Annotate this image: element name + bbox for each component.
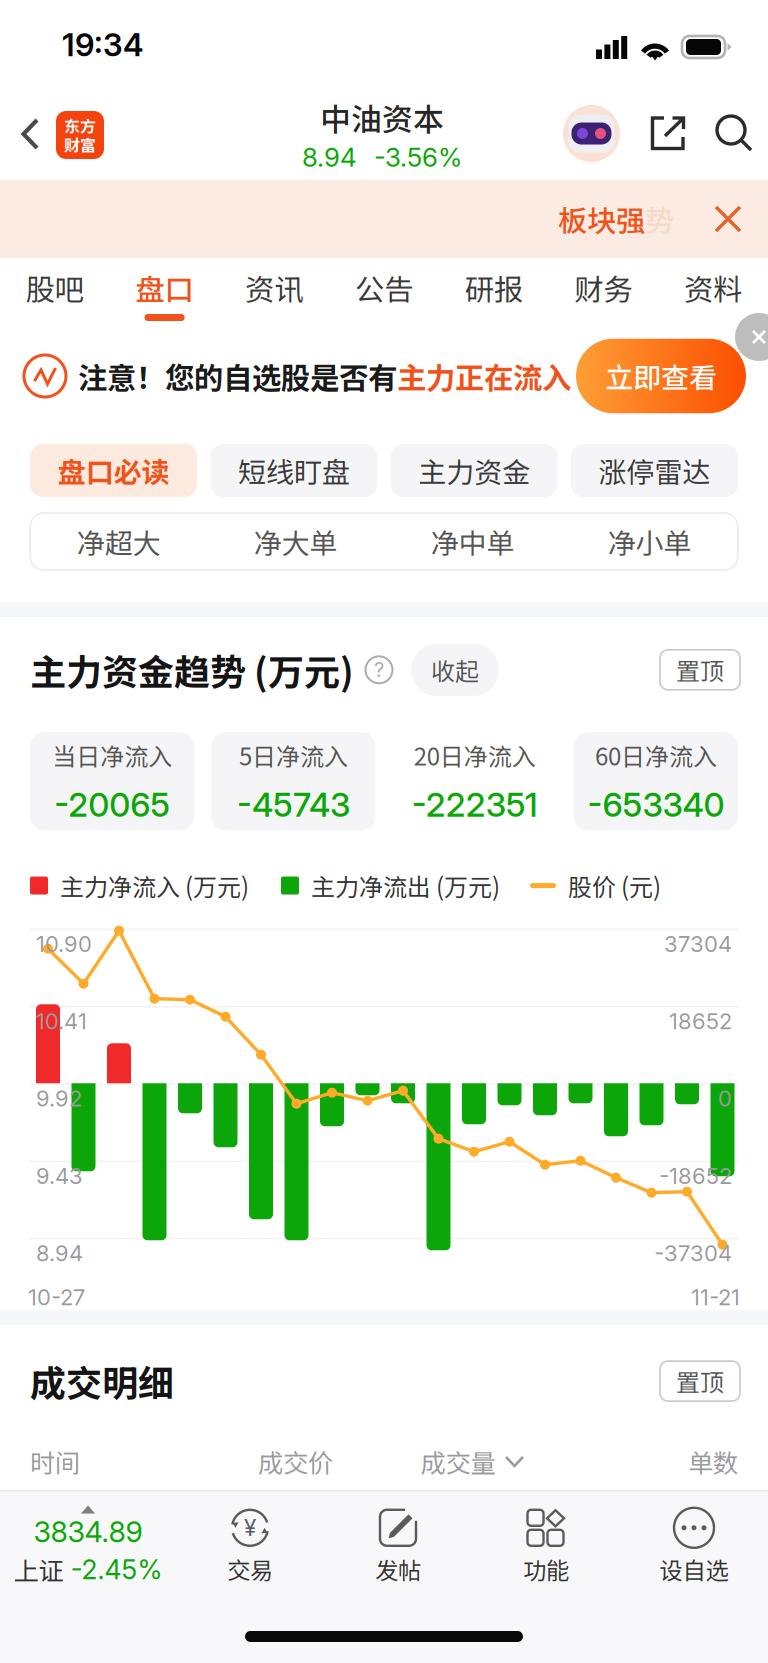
staticText: 东方 [64, 114, 96, 137]
button[interactable]: 5日净流入 [211, 732, 375, 830]
staticText: 盘口必读 [58, 450, 170, 491]
staticText: 9.43 [36, 1163, 83, 1189]
staticText: 5日净流入 [239, 738, 348, 772]
staticText: 9.92 [36, 1085, 82, 1112]
button[interactable]: 东方财富 [0, 88, 104, 159]
staticText: 中油资本 [320, 95, 444, 139]
staticText: 11-21 [691, 1284, 740, 1310]
staticText: 主力净流入 (万元) [60, 868, 249, 903]
staticText: 20日净流入 [414, 738, 536, 772]
staticText: -222351 [412, 784, 538, 825]
button[interactable]: 资料 [658, 255, 768, 328]
staticText: 立即查看 [605, 356, 717, 396]
button[interactable]: 关闭广告 [720, 327, 768, 375]
staticText: -37304 [654, 1240, 732, 1266]
button[interactable]: 置顶 [660, 1361, 740, 1401]
staticText: 主力正在流入 [397, 355, 571, 397]
button[interactable]: 净超大 [30, 513, 207, 570]
staticText: 当日净流入 [52, 738, 172, 772]
staticText: -2.45% [70, 1553, 162, 1586]
staticText: 成交价 [258, 1443, 333, 1480]
button[interactable]: ¥ [176, 1507, 324, 1586]
staticText: 研报 [465, 266, 523, 309]
button[interactable]: AI 助手 [0, 88, 620, 162]
staticText: 净中单 [430, 521, 514, 562]
button[interactable]: 分享 [0, 88, 768, 179]
staticText: 财富 [64, 133, 96, 156]
staticText: 3834.89 [33, 1514, 142, 1549]
staticText: 0 [718, 1085, 732, 1112]
button[interactable]: 财务 [549, 255, 658, 328]
staticText: 设自选 [659, 1552, 728, 1586]
button[interactable]: 当日净流入 [30, 732, 194, 830]
button[interactable]: 主力资金 [390, 444, 558, 497]
staticText: 60日净流入 [595, 738, 717, 772]
button[interactable]: 注意！ [0, 327, 768, 425]
staticText: 短线盯盘 [238, 450, 350, 491]
staticText: 净大单 [253, 521, 337, 562]
button[interactable]: 设自选 [620, 1507, 768, 1586]
button[interactable]: 发帖 [324, 1507, 472, 1586]
staticText: 势 [645, 198, 674, 240]
staticText: 公告 [355, 266, 413, 309]
staticText: 19:34 [62, 26, 144, 64]
staticText: 上证 [13, 1551, 63, 1588]
staticText: 单数 [688, 1443, 738, 1480]
button[interactable]: 3834.89 [0, 1505, 176, 1588]
staticText: 37304 [664, 931, 732, 957]
button[interactable]: 成交量 [420, 1443, 524, 1480]
staticText: -653340 [587, 784, 724, 825]
button[interactable]: 20日净流入 [392, 732, 557, 830]
staticText: 置顶 [676, 1364, 724, 1398]
staticText: 置顶 [676, 652, 724, 687]
staticText: 18652 [669, 1008, 732, 1035]
button[interactable]: 净中单 [384, 513, 561, 570]
staticText: 主力净流出 (万元) [311, 868, 500, 903]
staticText: 8.94 [302, 141, 357, 173]
button[interactable]: 盘口 [110, 255, 219, 328]
staticText: ¥ [244, 1514, 256, 1541]
staticText: 功能 [523, 1552, 569, 1586]
staticText: 净超大 [76, 521, 160, 562]
staticText: 板块强 [558, 198, 645, 240]
staticText: 资讯 [245, 266, 303, 309]
staticText: 成交量 [420, 1443, 495, 1480]
button[interactable]: 涨停雷达 [571, 444, 738, 497]
staticText: -20065 [54, 784, 170, 825]
button[interactable]: 净大单 [207, 513, 384, 570]
staticText: -18652 [659, 1163, 732, 1189]
button[interactable]: 60日净流入 [574, 732, 738, 830]
staticText: 10-27 [28, 1284, 85, 1310]
staticText: 主力资金趋势 (万元) [30, 644, 354, 696]
staticText: 交易 [227, 1552, 273, 1586]
button[interactable]: 置顶 [660, 650, 740, 690]
button[interactable]: 返回 [0, 88, 61, 180]
staticText: 股吧 [26, 266, 84, 309]
button[interactable]: 板块强 [558, 198, 674, 240]
button[interactable]: 净小单 [561, 513, 738, 570]
button[interactable]: 研报 [439, 255, 549, 328]
staticText: 财务 [574, 266, 632, 309]
button[interactable]: 收起 [411, 643, 499, 696]
button[interactable]: 短线盯盘 [210, 444, 377, 497]
button[interactable]: 股吧 [0, 255, 110, 328]
staticText: 10.41 [36, 1008, 87, 1035]
staticText: -45743 [237, 784, 350, 825]
staticText: 涨停雷达 [598, 450, 710, 491]
staticText: 注意！ [78, 355, 165, 397]
button[interactable]: 公告 [329, 255, 439, 328]
staticText: 10.90 [36, 931, 92, 957]
staticText: 收起 [431, 652, 479, 687]
button[interactable]: 资讯 [219, 255, 329, 328]
staticText: 8.94 [36, 1240, 83, 1266]
button[interactable]: 关闭 [674, 183, 768, 255]
staticText: 资料 [684, 266, 742, 309]
staticText: 净小单 [607, 521, 691, 562]
staticText: 主力资金 [418, 450, 530, 491]
button[interactable]: 功能 [472, 1507, 620, 1586]
staticText: 您的自选股是否有 [165, 355, 397, 397]
button[interactable]: 盘口必读 [30, 444, 197, 497]
staticText: 成交明细 [30, 1355, 174, 1407]
staticText: 股价 (元) [568, 868, 661, 903]
button[interactable]: 搜索 [0, 88, 768, 178]
